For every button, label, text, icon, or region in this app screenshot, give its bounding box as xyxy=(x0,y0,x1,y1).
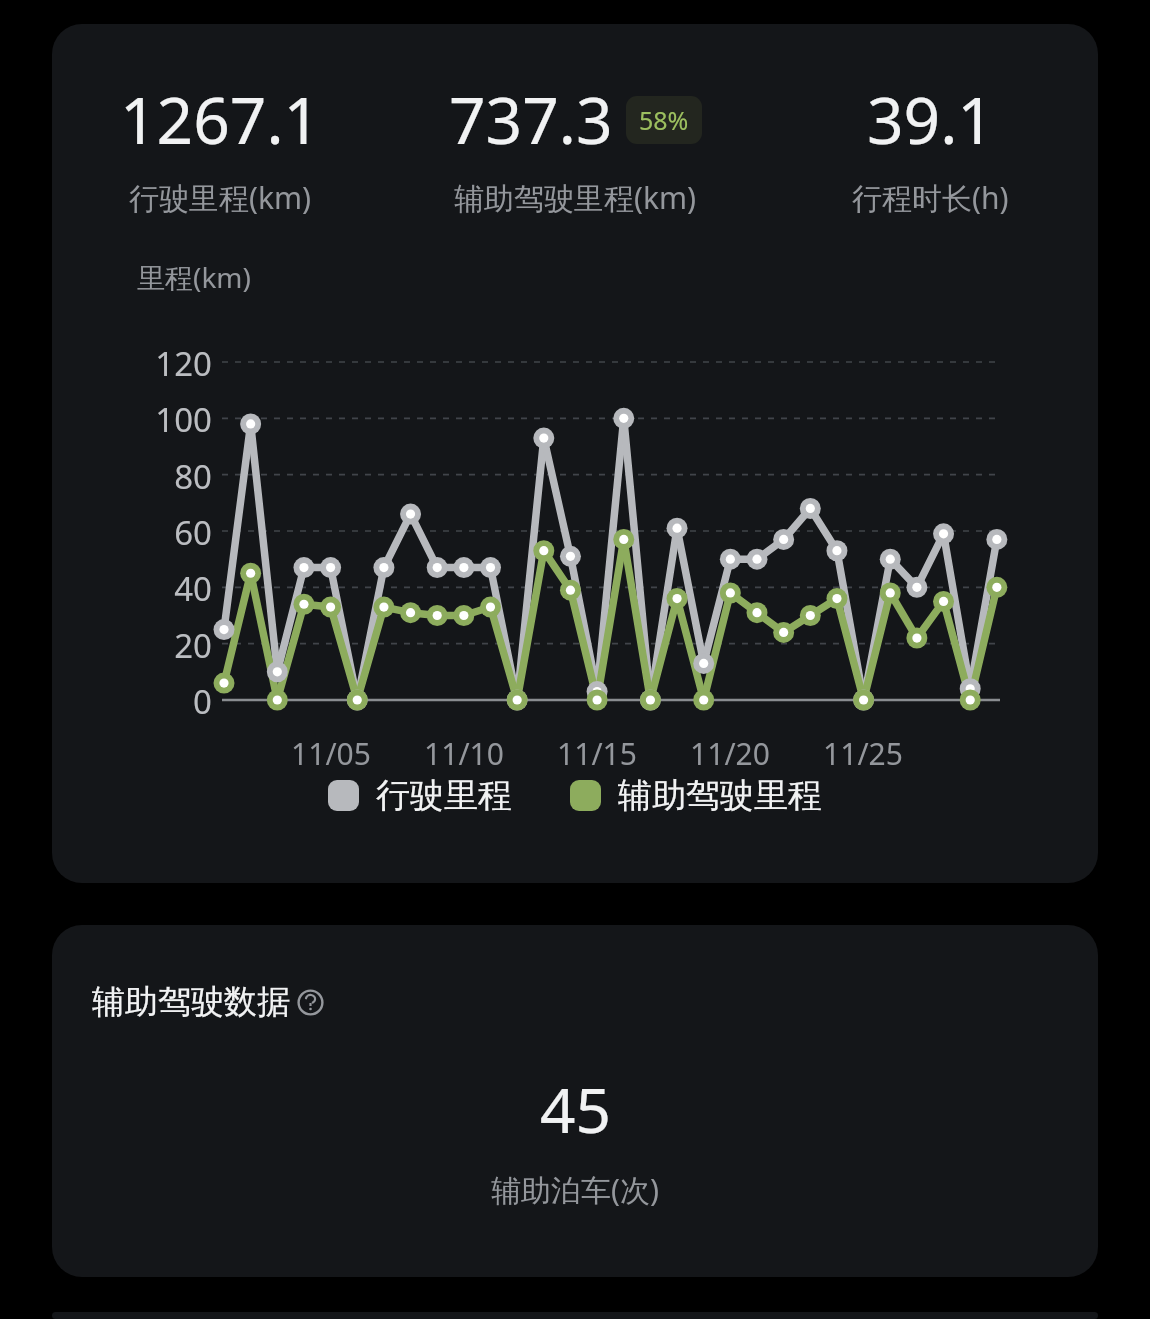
staticText: 辅助泊车(次) xyxy=(491,1169,659,1210)
staticText: 120 xyxy=(102,341,212,386)
button[interactable]: 737.3 xyxy=(388,76,763,218)
staticText: 11/15 xyxy=(537,733,657,774)
staticText: 辅助驾驶里程 xyxy=(618,774,822,817)
staticText: 20 xyxy=(102,623,212,668)
button[interactable]: 39.1 xyxy=(763,76,1098,218)
staticText: 辅助驾驶数据 xyxy=(92,981,290,1023)
button[interactable]: 1267.1 xyxy=(52,24,1098,883)
staticText: 11/10 xyxy=(404,733,524,774)
staticText: 11/25 xyxy=(803,733,923,774)
button[interactable]: 辅助驾驶数据说明 xyxy=(92,981,324,1023)
staticText: 里程(km) xyxy=(137,258,251,296)
staticText: 100 xyxy=(102,397,212,442)
staticText: 行程时长(h) xyxy=(852,177,1009,218)
staticText: 1267.1 xyxy=(120,76,321,163)
staticText: 11/05 xyxy=(271,733,391,774)
staticText: 0 xyxy=(102,679,212,724)
button[interactable]: 辅助驾驶数据说明 xyxy=(52,925,1098,1277)
staticText: 11/20 xyxy=(670,733,790,774)
staticText: 行驶里程(km) xyxy=(129,177,312,218)
staticText: 39.1 xyxy=(867,76,994,163)
button[interactable]: 辅助驾驶里程 xyxy=(570,774,822,817)
button[interactable]: 1267.1 xyxy=(52,76,388,218)
staticText: 58% xyxy=(639,103,689,137)
button[interactable]: 行驶里程 xyxy=(328,774,512,817)
staticText: 辅助驾驶里程(km) xyxy=(454,177,697,218)
staticText: 737.3 xyxy=(449,76,613,163)
staticText: 80 xyxy=(102,454,212,499)
staticText: 行驶里程 xyxy=(376,774,512,817)
staticText: 40 xyxy=(102,566,212,611)
staticText: 60 xyxy=(102,510,212,555)
staticText: 45 xyxy=(540,1067,611,1151)
